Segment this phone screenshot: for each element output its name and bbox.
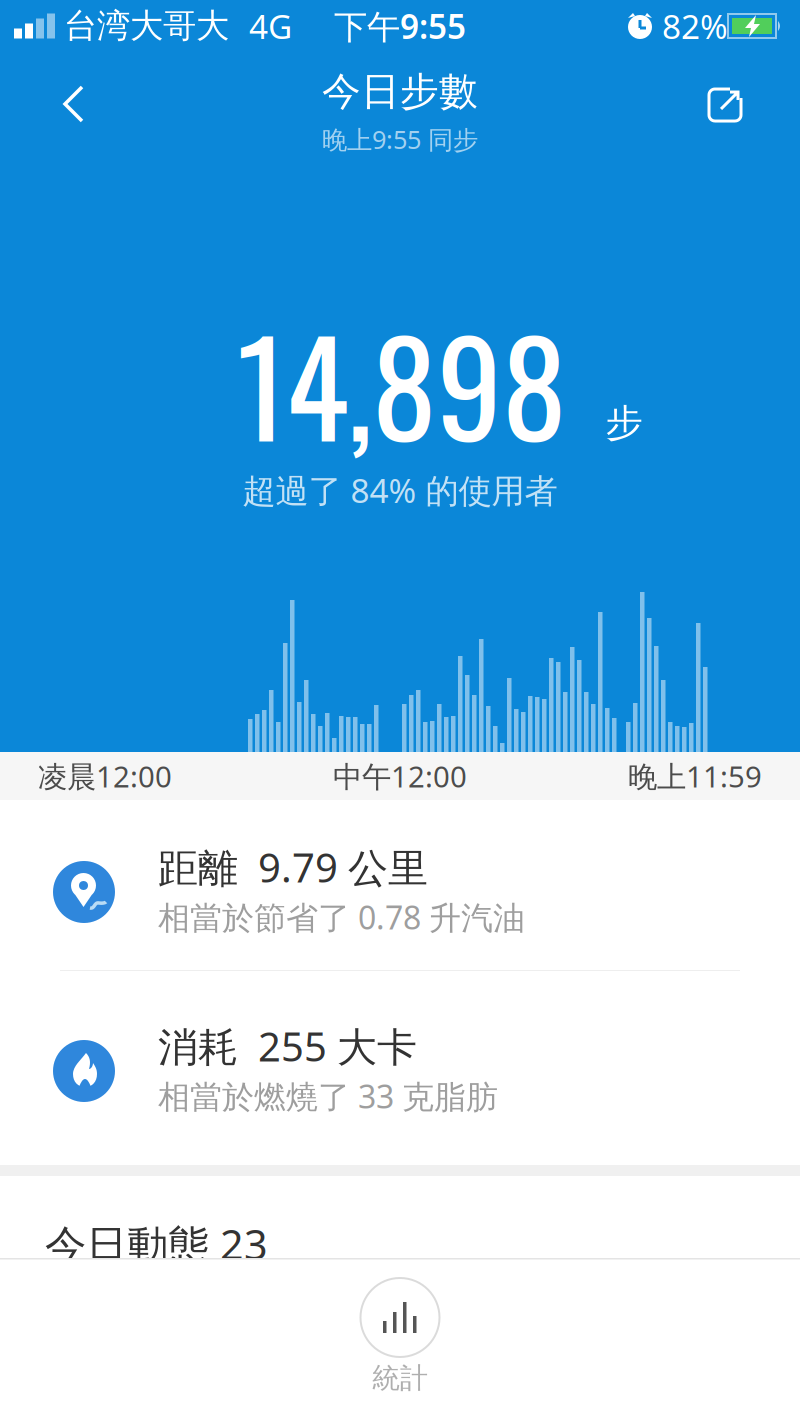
staticText: 82% [662,4,728,48]
button[interactable]: 消耗 255 大卡 [0,971,800,1165]
staticText: 台湾大哥大 [64,5,229,46]
staticText: 中午12:00 [333,756,467,795]
button[interactable] [695,75,755,135]
staticText: 下午9:55 [334,4,466,48]
staticText: 晚上9:55 同步 [322,122,478,156]
staticText: 距離 9.79 公里 [158,840,428,893]
button[interactable]: 距離 9.79 公里 [0,800,800,971]
button[interactable] [44,67,104,143]
staticText: 相當於燃燒了 33 克脂肪 [158,1075,498,1117]
staticText: 相當於節省了 0.78 升汽油 [158,896,525,938]
staticText: 14,898 [237,287,567,479]
staticText: 今日動態 23 [45,1217,268,1271]
staticText: 步 [605,400,642,446]
staticText: 統計 [372,1361,428,1395]
staticText: 晚上11:59 [628,756,762,795]
staticText: 超過了 84% 的使用者 [242,468,557,512]
staticText: 凌晨12:00 [38,756,172,795]
staticText: 今日步數 [322,68,478,115]
staticText: 消耗 255 大卡 [158,1019,417,1072]
staticText: 4G [249,4,292,48]
button[interactable]: 統計 [360,1258,439,1395]
